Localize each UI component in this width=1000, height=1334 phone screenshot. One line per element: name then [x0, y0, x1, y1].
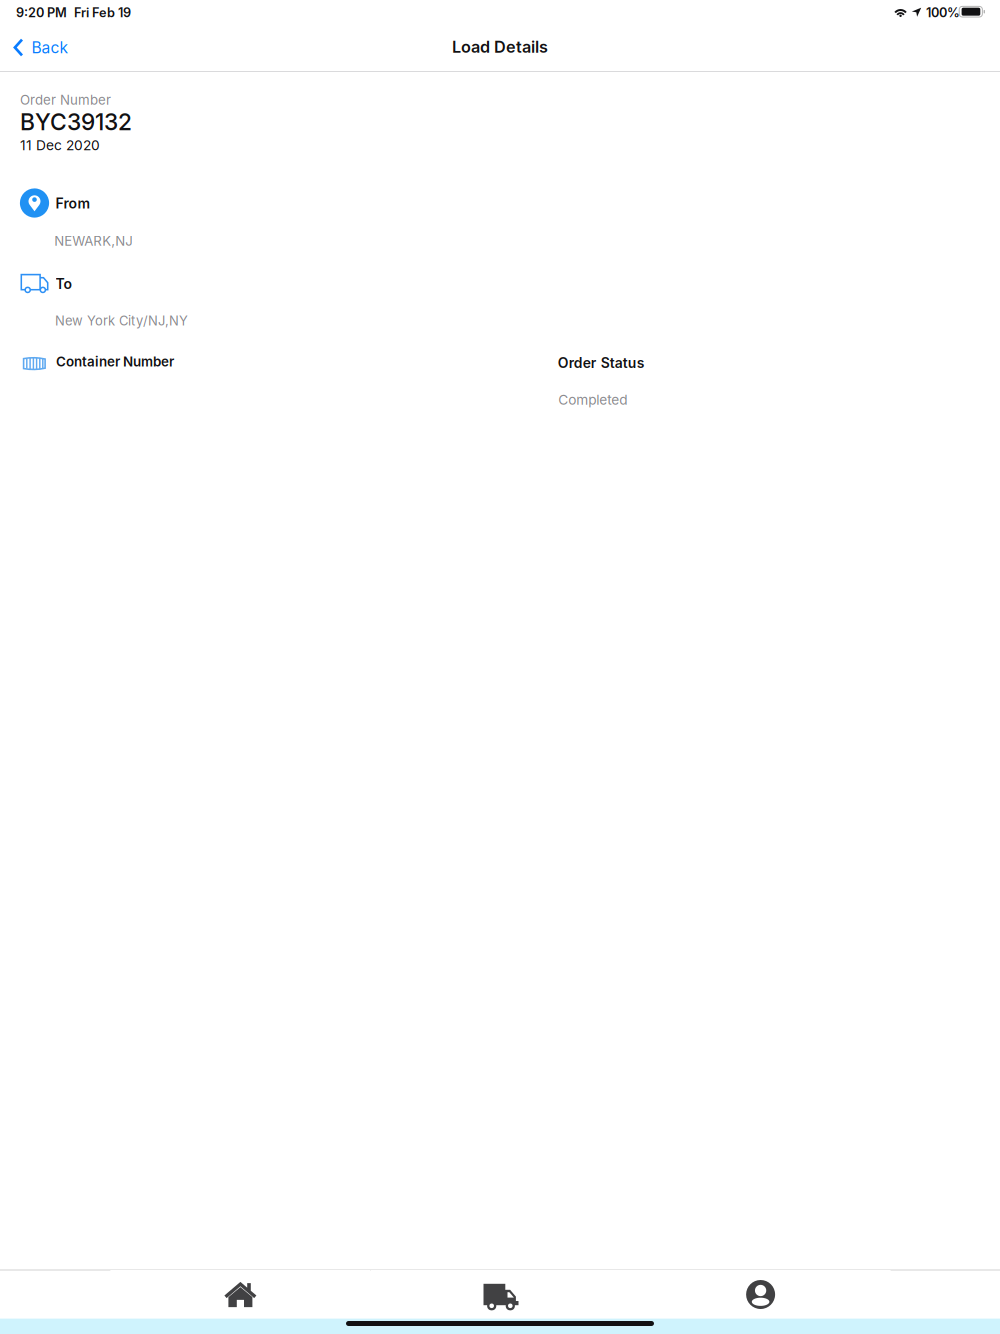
button[interactable]: Home — [110, 1270, 370, 1319]
staticText: 100% — [926, 5, 960, 20]
staticText: Container Number — [56, 353, 174, 370]
staticText: Back — [31, 38, 68, 57]
staticText: From — [55, 195, 90, 212]
staticText: 11 Dec 2020 — [20, 137, 100, 154]
staticText: Load Details — [452, 37, 548, 57]
button[interactable]: Back — [0, 27, 76, 67]
staticText: NEWARK,NJ — [54, 233, 133, 249]
staticText: 9:20 PM — [16, 5, 67, 20]
button[interactable]: Account — [631, 1270, 891, 1319]
staticText: Order Number — [20, 92, 111, 108]
staticText: Completed — [558, 391, 627, 408]
staticText: To — [55, 275, 72, 292]
staticText: New York City/NJ,NY — [55, 313, 188, 329]
staticText: Order Status — [558, 354, 645, 371]
button[interactable]: Loads — [371, 1270, 631, 1319]
staticText: Fri Feb 19 — [74, 5, 131, 20]
staticText: BYC39132 — [20, 108, 132, 136]
